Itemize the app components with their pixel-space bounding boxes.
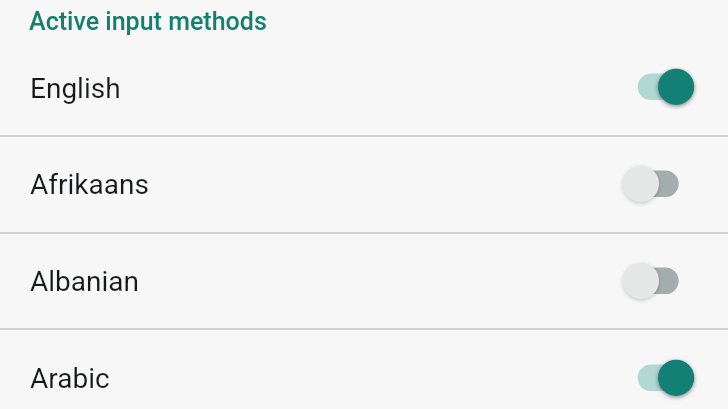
staticText: Arabic xyxy=(30,362,638,395)
staticText: English xyxy=(30,72,638,105)
button[interactable]: Toggle Arabic xyxy=(638,357,694,401)
button[interactable]: Afrikaans xyxy=(0,136,728,233)
button[interactable]: Toggle English xyxy=(638,66,694,110)
button[interactable]: Arabic xyxy=(0,330,728,409)
button[interactable]: English xyxy=(0,41,728,135)
staticText: Active input methods xyxy=(29,7,267,36)
button[interactable]: Albanian xyxy=(0,233,728,330)
button[interactable]: Toggle Afrikaans xyxy=(638,163,694,207)
staticText: Albanian xyxy=(30,265,638,298)
button[interactable]: Toggle Albanian xyxy=(638,260,694,304)
staticText: Afrikaans xyxy=(30,168,638,201)
